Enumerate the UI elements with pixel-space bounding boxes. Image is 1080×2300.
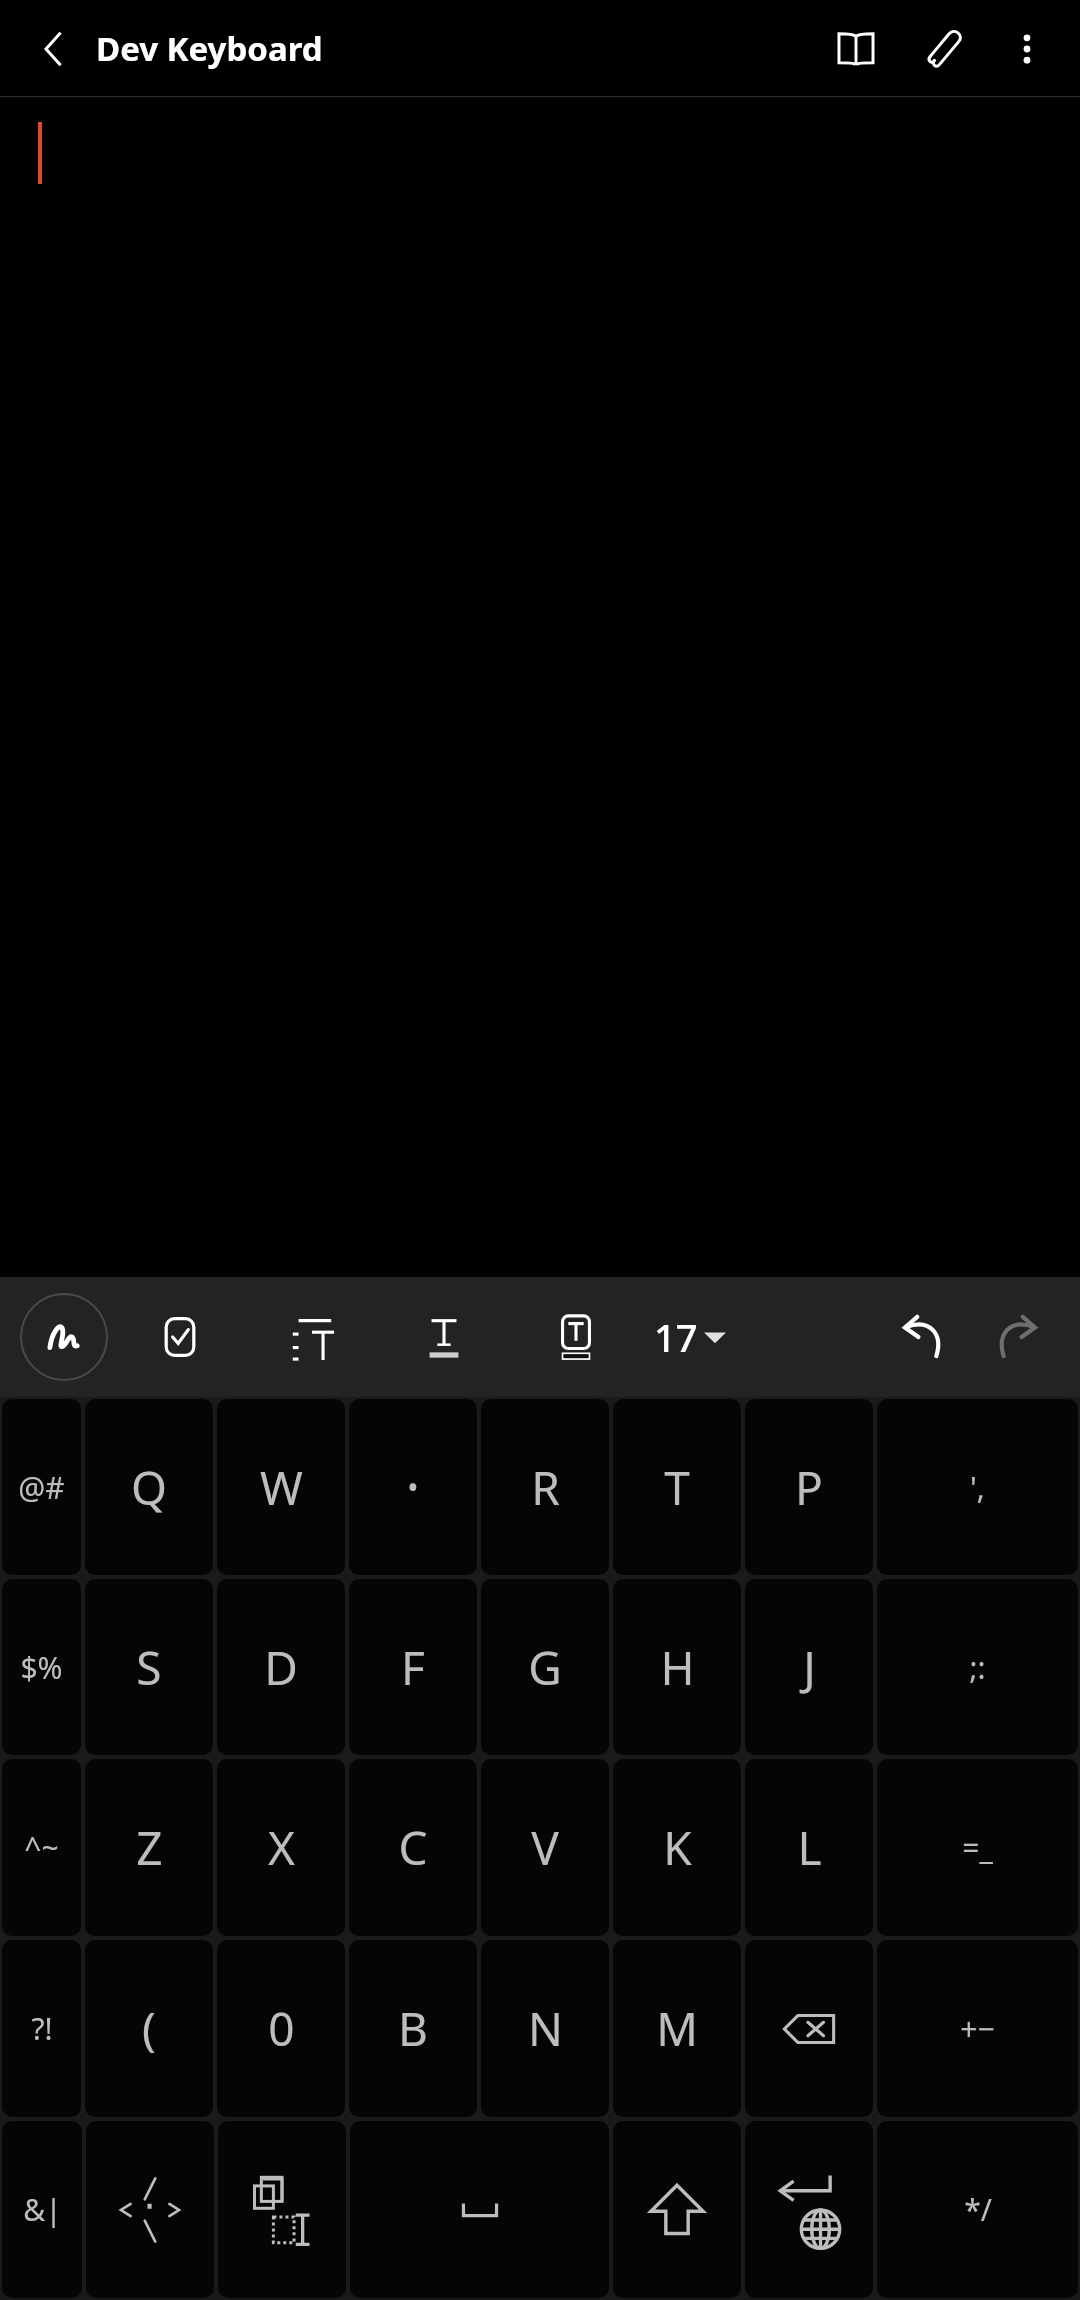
button[interactable]: K xyxy=(613,1759,741,1936)
button[interactable]: More options xyxy=(988,5,1066,93)
staticText: F xyxy=(401,1636,425,1699)
button[interactable]: V xyxy=(481,1759,609,1936)
button[interactable]: D xyxy=(217,1579,345,1755)
button[interactable]: ( xyxy=(85,1940,213,2117)
staticText: 0 xyxy=(268,1997,295,2060)
staticText: K xyxy=(663,1816,692,1879)
staticText: J xyxy=(803,1636,816,1699)
button[interactable]: T xyxy=(613,1399,741,1575)
staticText: ?! xyxy=(31,2008,53,2049)
button[interactable]: B xyxy=(349,1940,477,2117)
staticText: $% xyxy=(20,1647,63,1688)
button[interactable]: Q xyxy=(85,1399,213,1575)
staticText: 17 xyxy=(654,1311,698,1363)
button[interactable]: Backspace xyxy=(745,1940,873,2117)
staticText: ^~ xyxy=(24,1827,59,1868)
button[interactable]: ', xyxy=(877,1399,1078,1575)
button[interactable]: 17 xyxy=(654,1293,726,1381)
staticText: R xyxy=(531,1456,560,1519)
button[interactable]: Text style xyxy=(400,1293,488,1381)
staticText: Dev Keyboard xyxy=(96,26,323,71)
button[interactable]: 0 xyxy=(217,1940,345,2117)
staticText: M xyxy=(656,1997,698,2060)
button[interactable]: L xyxy=(745,1759,873,1936)
button[interactable]: S xyxy=(85,1579,213,1755)
button[interactable]: P xyxy=(745,1399,873,1575)
button[interactable]: Check xyxy=(136,1293,224,1381)
staticText: &| xyxy=(23,2189,62,2230)
button[interactable]: Undo xyxy=(878,1291,970,1383)
button[interactable]: N xyxy=(481,1940,609,2117)
staticText: @# xyxy=(18,1467,65,1508)
staticText: L xyxy=(797,1816,822,1879)
button[interactable]: Shift xyxy=(613,2121,741,2298)
button[interactable]: ^~ xyxy=(2,1759,81,1936)
staticText: X xyxy=(268,1816,295,1879)
button[interactable]: Arrow keys xyxy=(86,2121,214,2298)
button[interactable]: Indent xyxy=(268,1293,356,1381)
button[interactable]: @# xyxy=(2,1399,81,1575)
button[interactable]: =_ xyxy=(877,1759,1078,1936)
button[interactable]: +− xyxy=(877,1940,1078,2117)
staticText: P xyxy=(795,1456,823,1519)
staticText: +− xyxy=(960,2008,995,2049)
staticText: C xyxy=(398,1816,428,1879)
staticText: W xyxy=(260,1456,303,1519)
staticText: G xyxy=(528,1636,562,1699)
staticText: =_ xyxy=(962,1827,993,1868)
button[interactable]: M xyxy=(613,1940,741,2117)
staticText: ( xyxy=(142,1997,156,2060)
staticText: T xyxy=(664,1456,690,1519)
button[interactable]: Enter and language xyxy=(745,2121,873,2298)
staticText: H xyxy=(660,1636,695,1699)
button[interactable]: G xyxy=(481,1579,609,1755)
button[interactable]: C xyxy=(349,1759,477,1936)
button[interactable]: &| xyxy=(2,2121,82,2298)
staticText: V xyxy=(531,1816,559,1879)
staticText: Z xyxy=(136,1816,163,1879)
button[interactable]: Z xyxy=(85,1759,213,1936)
button[interactable]: Handwriting xyxy=(20,1293,108,1381)
button[interactable]: ;: xyxy=(877,1579,1078,1755)
staticText: */ xyxy=(964,2189,992,2230)
button[interactable]: H xyxy=(613,1579,741,1755)
button[interactable]: Attach xyxy=(900,5,988,93)
button[interactable]: */ xyxy=(877,2121,1078,2298)
staticText: ;: xyxy=(969,1647,986,1688)
button[interactable]: Dictionary xyxy=(812,5,900,93)
button[interactable]: F xyxy=(349,1579,477,1755)
button[interactable]: $% xyxy=(2,1579,81,1755)
button[interactable]: J xyxy=(745,1579,873,1755)
button[interactable]: Redo xyxy=(970,1291,1062,1383)
staticText: S xyxy=(136,1636,162,1699)
button[interactable]: Back xyxy=(18,13,90,85)
staticText: B xyxy=(398,1997,428,2060)
button[interactable]: Text box xyxy=(532,1293,620,1381)
staticText: D xyxy=(264,1636,298,1699)
staticText: • xyxy=(407,1467,419,1508)
button[interactable]: Copy and select xyxy=(218,2121,346,2298)
staticText: N xyxy=(528,1997,563,2060)
button[interactable]: R xyxy=(481,1399,609,1575)
button[interactable]: X xyxy=(217,1759,345,1936)
button[interactable]: Space xyxy=(350,2121,609,2298)
button[interactable]: • xyxy=(349,1399,477,1575)
staticText: Q xyxy=(131,1456,167,1519)
staticText: ', xyxy=(970,1467,985,1508)
button[interactable]: W xyxy=(217,1399,345,1575)
button[interactable]: ?! xyxy=(2,1940,81,2117)
